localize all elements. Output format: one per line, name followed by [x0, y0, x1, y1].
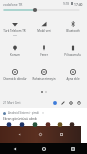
- staticText: Türk Telekom TR: [3, 29, 26, 33]
- button[interactable]: Mobil veri: [29, 17, 58, 41]
- button[interactable]: Android Sistemi · şimdi: [0, 108, 87, 126]
- staticText: Ekran görüntüsü alındı: [3, 117, 38, 121]
- button[interactable]: Pil tasarrufu: [58, 41, 87, 65]
- staticText: Rahatsız etmeyin: [32, 77, 56, 81]
- staticText: Android Sistemi · şimdi: [8, 111, 40, 115]
- button[interactable]: Türk Telekom TR: [0, 17, 29, 41]
- staticText: vodafone TR: [3, 2, 23, 6]
- staticText: Konum: [10, 53, 20, 57]
- button[interactable]: Fener: [29, 41, 58, 65]
- staticText: Fener: [40, 53, 48, 57]
- staticText: 17:40: [74, 2, 83, 6]
- staticText: %78: [63, 2, 70, 6]
- button[interactable]: Konum: [0, 41, 29, 65]
- staticText: LTE: [13, 33, 17, 36]
- staticText: Otomatik döndür: [3, 77, 27, 81]
- button[interactable]: Rahatsız etmeyin: [29, 65, 58, 89]
- staticText: Pil tasarrufu: [64, 53, 81, 57]
- button[interactable]: Home: [29, 143, 58, 154]
- button[interactable]: Recents: [58, 143, 87, 154]
- staticText: Bluetooth: [66, 29, 80, 33]
- button[interactable]: Back: [0, 143, 29, 154]
- button[interactable]: Ayna ekle: [58, 65, 87, 89]
- button[interactable]: Power: [75, 99, 83, 107]
- staticText: Ayna ekle: [66, 77, 80, 81]
- staticText: Mobil veri: [37, 29, 51, 33]
- button[interactable]: Bluetooth: [58, 17, 87, 41]
- button[interactable]: Otomatik döndür: [0, 65, 29, 89]
- button[interactable]: User account: [51, 99, 59, 107]
- button[interactable]: [0, 7, 87, 13]
- staticText: 21 Mart Cmt: [3, 101, 21, 105]
- button[interactable]: Settings: [67, 99, 75, 107]
- button[interactable]: Edit tiles: [59, 99, 67, 107]
